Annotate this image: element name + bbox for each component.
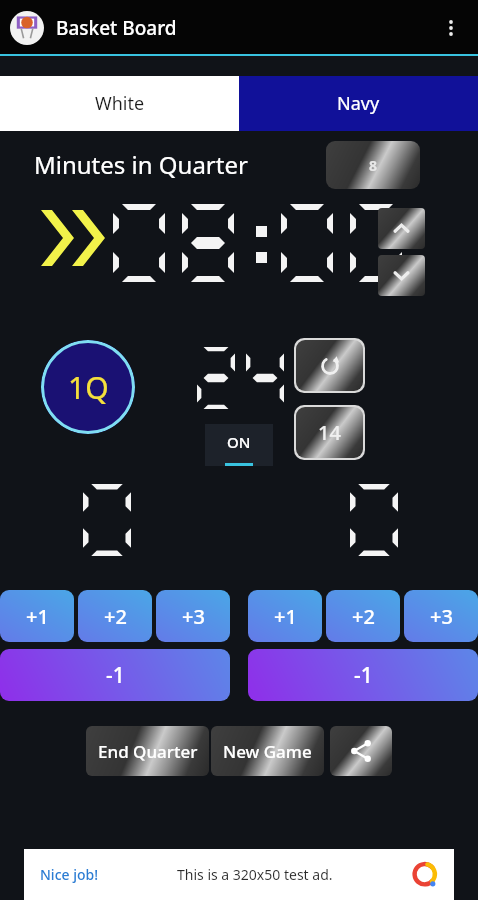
button[interactable]: End Quarter	[86, 726, 209, 776]
staticText: +2	[104, 603, 127, 630]
button[interactable]: 1Q	[41, 340, 135, 434]
staticText: -1	[354, 661, 373, 690]
staticText: Minutes in Quarter	[34, 148, 248, 181]
button[interactable]: New Game	[211, 726, 324, 776]
staticText: -1	[106, 661, 125, 690]
button[interactable]: Increase time	[378, 208, 425, 249]
button[interactable]: Navy	[239, 76, 478, 131]
button[interactable]: 8	[326, 141, 420, 189]
button[interactable]: White	[0, 76, 239, 131]
staticText: This is a 320x50 test ad.	[177, 865, 333, 884]
staticText: 14	[318, 419, 341, 446]
staticText: Basket Board	[56, 15, 177, 41]
staticText: Navy	[337, 91, 380, 116]
staticText: ON	[227, 432, 251, 452]
staticText: +3	[430, 603, 453, 630]
button[interactable]: -1	[248, 649, 478, 701]
staticText: +2	[352, 603, 375, 630]
staticText: End Quarter	[98, 740, 198, 763]
staticText: 1Q	[68, 367, 109, 408]
staticText: Nice job!	[40, 865, 99, 884]
staticText: 8	[369, 156, 378, 175]
staticText: +1	[26, 603, 49, 630]
staticText: White	[95, 91, 145, 116]
staticText: +3	[182, 603, 205, 630]
button[interactable]: +3	[156, 590, 230, 642]
button[interactable]: More options	[434, 11, 468, 45]
button[interactable]: +1	[0, 590, 74, 642]
button[interactable]: Reset shot clock	[296, 340, 363, 391]
staticText: +1	[274, 603, 297, 630]
button[interactable]: -1	[0, 649, 230, 701]
button[interactable]: Decrease time	[378, 255, 425, 296]
button[interactable]: ON	[205, 424, 273, 466]
button[interactable]: +1	[248, 590, 322, 642]
button[interactable]: +2	[78, 590, 152, 642]
staticText: New Game	[223, 740, 312, 763]
button[interactable]: 14	[296, 407, 363, 458]
button[interactable]: +2	[326, 590, 400, 642]
button[interactable]: Nice job!	[40, 849, 438, 900]
button[interactable]: Share	[330, 726, 392, 776]
button[interactable]: +3	[404, 590, 478, 642]
